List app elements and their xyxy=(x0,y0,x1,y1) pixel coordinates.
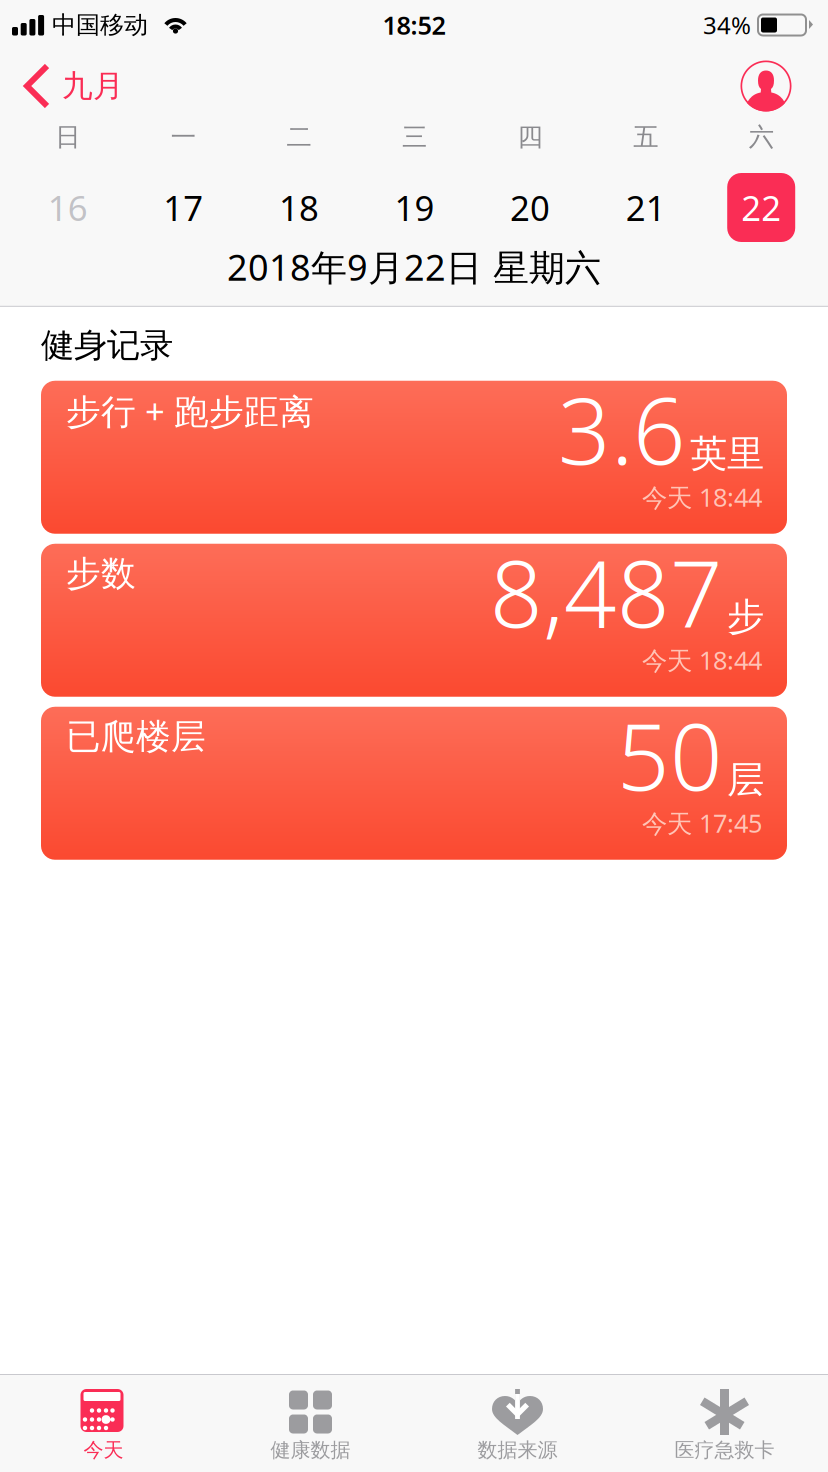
button[interactable]: 医疗急救卡 xyxy=(621,1375,828,1472)
staticText: 今天 18:44 xyxy=(642,480,762,514)
staticText: 数据来源 xyxy=(477,1438,557,1462)
staticText: 18:52 xyxy=(382,8,445,42)
button[interactable]: 九月 xyxy=(0,60,124,112)
button[interactable]: 今天 xyxy=(0,1375,207,1472)
staticText: 2018年9月22日 星期六 xyxy=(227,243,601,291)
button[interactable]: 步数 xyxy=(41,544,787,697)
staticText: 3.6 xyxy=(558,368,686,490)
staticText: 日 xyxy=(55,121,80,152)
staticText: 20 xyxy=(510,184,550,230)
staticText: 16 xyxy=(48,184,88,230)
button[interactable]: 六 xyxy=(703,122,819,242)
staticText: 18 xyxy=(279,184,319,230)
staticText: 50 xyxy=(617,694,723,816)
staticText: 中国移动 xyxy=(52,10,148,40)
staticText: 已爬楼层 xyxy=(66,715,206,758)
staticText: 二 xyxy=(286,121,311,152)
staticText: 健身记录 xyxy=(41,325,173,366)
staticText: 四 xyxy=(518,121,543,152)
button[interactable]: 三 xyxy=(357,122,472,242)
button[interactable]: 四 xyxy=(472,122,588,242)
staticText: 九月 xyxy=(62,67,124,105)
button[interactable]: 一 xyxy=(126,122,241,242)
button[interactable]: 日 xyxy=(10,122,126,242)
staticText: 17 xyxy=(163,184,203,230)
staticText: 今天 xyxy=(83,1438,123,1462)
button[interactable]: Profile xyxy=(740,60,828,112)
button[interactable]: 数据来源 xyxy=(414,1375,621,1472)
button[interactable]: 健康数据 xyxy=(207,1375,414,1472)
button[interactable]: 二 xyxy=(241,122,357,242)
staticText: 三 xyxy=(402,121,427,152)
button[interactable]: 五 xyxy=(588,122,703,242)
staticText: 步行 + 跑步距离 xyxy=(66,388,314,434)
staticText: 层 xyxy=(727,757,764,803)
staticText: 英里 xyxy=(690,431,764,477)
staticText: 22 xyxy=(741,184,781,230)
staticText: 一 xyxy=(171,121,196,152)
staticText: 今天 18:44 xyxy=(642,643,762,677)
staticText: 19 xyxy=(394,184,434,230)
staticText: 五 xyxy=(633,121,658,152)
staticText: 步 xyxy=(727,594,764,640)
staticText: 21 xyxy=(626,184,666,230)
staticText: 8,487 xyxy=(490,531,723,653)
staticText: 34% xyxy=(703,9,751,41)
staticText: 今天 17:45 xyxy=(642,806,762,840)
staticText: 步数 xyxy=(66,552,136,595)
staticText: 六 xyxy=(749,121,774,152)
button[interactable]: 已爬楼层 xyxy=(41,707,787,860)
staticText: 医疗急救卡 xyxy=(674,1438,774,1462)
staticText: 健康数据 xyxy=(270,1438,350,1462)
button[interactable]: 步行 + 跑步距离 xyxy=(41,381,787,534)
